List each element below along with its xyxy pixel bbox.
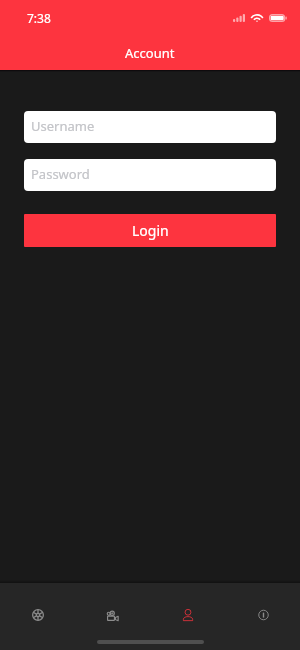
staticText: Account — [125, 44, 175, 62]
button[interactable]: Password — [24, 159, 276, 191]
button[interactable]: Videos — [91, 600, 135, 630]
button[interactable]: Sports — [16, 600, 60, 630]
button[interactable]: Info — [241, 600, 285, 630]
button[interactable]: Username — [24, 111, 276, 143]
staticText: Login — [132, 221, 169, 240]
staticText: Username — [31, 117, 95, 135]
staticText: 7:38 — [27, 10, 51, 26]
button[interactable]: Login — [24, 214, 276, 247]
button[interactable]: Account — [166, 600, 210, 630]
staticText: Password — [31, 165, 90, 183]
